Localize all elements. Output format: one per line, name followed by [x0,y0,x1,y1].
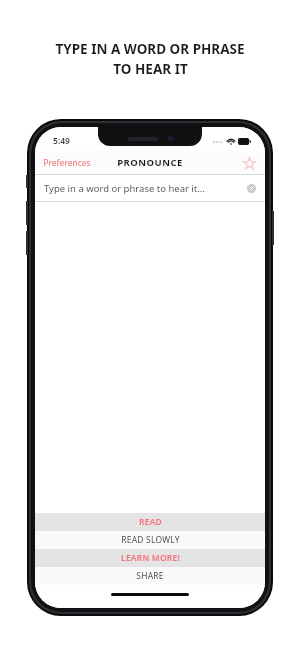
button[interactable]: LEARN MORE! [35,549,265,567]
staticText: Type in a word or phrase to hear it… [44,182,205,195]
staticText: TO HEAR IT [113,60,188,78]
button[interactable]: Type in a word or phrase to hear it… [35,175,265,201]
button[interactable]: READ [35,513,265,531]
button[interactable]: Preferences [35,153,99,173]
staticText: READ SLOWLY [121,534,180,546]
staticText: 5:49 [53,135,70,147]
button[interactable]: SHARE [35,567,265,585]
staticText: SHARE [136,570,164,582]
staticText: Preferences [43,157,91,169]
staticText: LEARN MORE! [121,552,180,564]
staticText: PRONOUNCE [117,156,183,169]
button[interactable]: Clear text [244,181,258,195]
button[interactable]: Favorite [239,153,259,173]
staticText: TYPE IN A WORD OR PHRASE [55,40,245,58]
button[interactable]: READ SLOWLY [35,531,265,549]
staticText: READ [139,516,162,528]
